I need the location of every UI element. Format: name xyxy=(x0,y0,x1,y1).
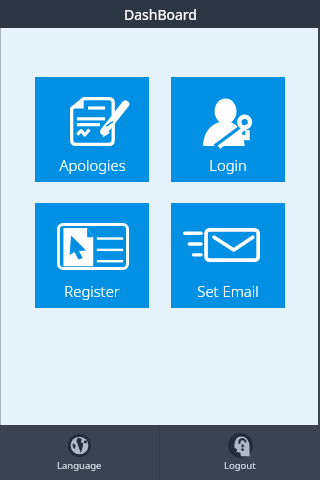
button[interactable]: Logout xyxy=(160,425,320,480)
staticText: Apologies xyxy=(59,155,126,175)
staticText: Language xyxy=(57,459,102,472)
other: Language xyxy=(68,434,91,457)
button[interactable]: Register xyxy=(35,203,149,308)
staticText: Login xyxy=(209,155,247,175)
button[interactable]: Set Email xyxy=(171,203,285,308)
button[interactable]: Login xyxy=(171,77,285,182)
button[interactable]: Language xyxy=(0,425,159,480)
staticText: DashBoard xyxy=(124,5,197,24)
other: Logout xyxy=(228,433,253,458)
staticText: Register xyxy=(64,281,120,301)
button[interactable]: Apologies xyxy=(35,77,149,182)
staticText: Set Email xyxy=(197,281,259,301)
staticText: Logout xyxy=(224,459,256,472)
